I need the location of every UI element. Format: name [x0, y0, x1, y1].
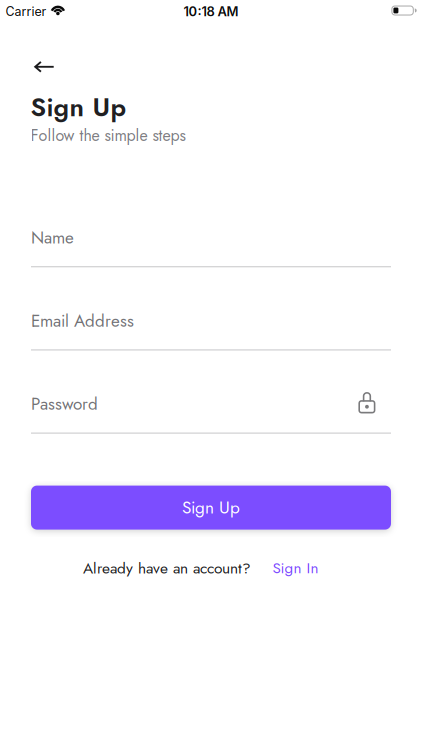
button[interactable]: Back — [22, 52, 66, 81]
button[interactable]: Sign Up — [31, 486, 391, 530]
staticText: Carrier — [5, 4, 46, 19]
staticText: Password — [31, 392, 98, 416]
button[interactable]: Name — [31, 225, 391, 267]
staticText: Follow the simple steps — [30, 124, 185, 147]
staticText: Email Address — [31, 308, 134, 333]
staticText: Name — [31, 225, 74, 250]
button[interactable]: Sign In — [273, 557, 319, 579]
staticText: Sign In — [273, 557, 319, 579]
staticText: Sign Up — [182, 495, 240, 520]
button[interactable]: Email Address — [31, 308, 391, 350]
staticText: 10:18 AM — [183, 4, 238, 19]
button[interactable]: Password — [31, 392, 391, 434]
staticText: Sign Up — [30, 88, 126, 126]
staticText: Already have an account? — [83, 557, 251, 579]
